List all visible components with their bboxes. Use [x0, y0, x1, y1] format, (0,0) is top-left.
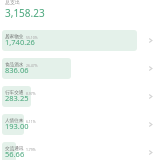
staticText: 193.00	[5, 121, 29, 131]
staticText: 行车交通	[5, 90, 24, 96]
staticText: 56.66	[5, 149, 25, 159]
other: Details	[148, 122, 153, 127]
staticText: 1.79%	[26, 147, 36, 152]
staticText: 3,158.23	[5, 6, 45, 20]
other: Details	[148, 66, 153, 71]
button[interactable]: 居家物业	[0, 30, 160, 51]
other: Details	[148, 38, 153, 43]
button[interactable]: 交流通讯	[0, 142, 160, 160]
staticText: 居家物业	[5, 34, 24, 40]
staticText: 总支出	[5, 0, 20, 5]
staticText: 1,740.26	[5, 37, 35, 47]
staticText: 8.97%	[26, 91, 36, 96]
button[interactable]: 食品酒水	[0, 58, 160, 79]
staticText: 食品酒水	[5, 62, 24, 68]
button[interactable]: 行车交通	[0, 86, 160, 107]
staticText: 人情往来	[5, 118, 24, 124]
button[interactable]: 人情往来	[0, 114, 160, 135]
staticText: 836.06	[5, 65, 29, 75]
other: Details	[148, 94, 153, 99]
staticText: 交流通讯	[5, 146, 24, 152]
staticText: 6.11%	[26, 119, 36, 124]
other: Details	[148, 150, 153, 155]
staticText: 55.10%	[26, 35, 38, 40]
staticText: 283.25	[5, 93, 29, 103]
staticText: 26.47%	[26, 63, 38, 68]
